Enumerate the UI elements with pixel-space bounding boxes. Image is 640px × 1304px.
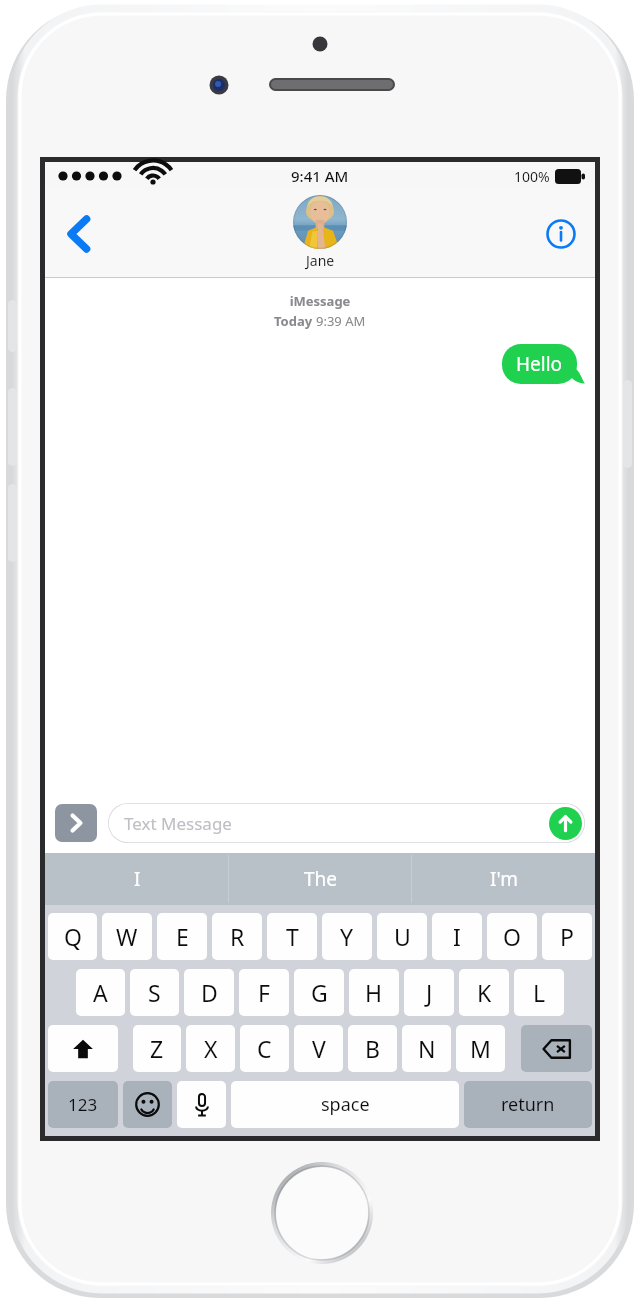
staticText: P: [560, 921, 574, 952]
button[interactable]: 123: [48, 1081, 118, 1128]
staticText: S: [148, 977, 161, 1008]
button[interactable]: Dictate: [177, 1081, 226, 1128]
button[interactable]: A: [76, 969, 125, 1016]
staticText: D: [201, 977, 218, 1008]
button[interactable]: Emoji: [123, 1081, 172, 1128]
staticText: 123: [68, 1093, 98, 1116]
button[interactable]: N: [402, 1025, 451, 1072]
button[interactable]: V: [294, 1025, 343, 1072]
staticText: return: [501, 1092, 555, 1117]
button[interactable]: L: [514, 969, 564, 1016]
button[interactable]: D: [184, 969, 234, 1016]
staticText: I: [134, 866, 141, 892]
button[interactable]: K: [459, 969, 509, 1016]
staticText: F: [258, 977, 270, 1008]
staticText: V: [312, 1033, 326, 1064]
button[interactable]: Y: [322, 913, 372, 960]
button[interactable]: I: [432, 913, 482, 960]
staticText: B: [365, 1033, 380, 1064]
button[interactable]: W: [102, 913, 152, 960]
button[interactable]: F: [239, 969, 289, 1016]
button[interactable]: Backspace: [521, 1025, 592, 1072]
button[interactable]: H: [349, 969, 399, 1016]
button[interactable]: P: [542, 913, 592, 960]
staticText: 100%: [514, 167, 550, 186]
button[interactable]: Shift: [48, 1025, 118, 1072]
button[interactable]: Hello: [502, 344, 585, 384]
button[interactable]: I'm: [412, 853, 595, 905]
button[interactable]: J: [404, 969, 454, 1016]
button[interactable]: Text Message: [108, 803, 585, 843]
staticText: E: [176, 921, 189, 952]
button[interactable]: return: [464, 1081, 592, 1128]
button[interactable]: Send: [549, 807, 582, 840]
button[interactable]: C: [240, 1025, 289, 1072]
staticText: O: [503, 921, 521, 952]
staticText: R: [230, 921, 245, 952]
staticText: K: [477, 977, 492, 1008]
staticText: U: [394, 921, 411, 952]
staticText: X: [204, 1033, 218, 1064]
staticText: Y: [340, 921, 354, 952]
staticText: M: [470, 1033, 491, 1064]
staticText: Jane: [306, 251, 335, 270]
staticText: Q: [64, 921, 82, 952]
button[interactable]: space: [231, 1081, 459, 1128]
staticText: 9:41 AM: [291, 166, 349, 186]
button[interactable]: E: [157, 913, 207, 960]
staticText: Hello: [516, 351, 563, 377]
staticText: L: [533, 977, 546, 1008]
button[interactable]: Details: [535, 208, 587, 260]
button[interactable]: R: [212, 913, 262, 960]
button[interactable]: G: [294, 969, 344, 1016]
button[interactable]: U: [377, 913, 427, 960]
staticText: G: [311, 977, 328, 1008]
staticText: Today: [274, 312, 316, 330]
button[interactable]: App drawer: [55, 804, 97, 842]
staticText: Z: [150, 1033, 164, 1064]
button[interactable]: O: [487, 913, 537, 960]
staticText: H: [365, 977, 383, 1008]
staticText: T: [286, 921, 299, 952]
button[interactable]: B: [348, 1025, 397, 1072]
staticText: iMessage: [45, 292, 595, 310]
staticText: I: [453, 921, 461, 952]
button[interactable]: S: [130, 969, 179, 1016]
button[interactable]: T: [267, 913, 317, 960]
staticText: C: [257, 1033, 272, 1064]
staticText: space: [321, 1092, 370, 1117]
button[interactable]: X: [186, 1025, 235, 1072]
button[interactable]: Jane: [293, 195, 347, 270]
button[interactable]: I: [45, 853, 229, 905]
button[interactable]: The: [229, 853, 412, 905]
button[interactable]: Back: [51, 206, 107, 262]
staticText: W: [116, 921, 138, 952]
button[interactable]: Q: [48, 913, 97, 960]
staticText: 9:39 AM: [316, 312, 366, 330]
button[interactable]: M: [456, 1025, 505, 1072]
staticText: A: [93, 977, 108, 1008]
button[interactable]: Z: [133, 1025, 181, 1072]
staticText: Text Message: [124, 812, 232, 835]
staticText: The: [304, 866, 338, 892]
staticText: I'm: [490, 866, 518, 892]
staticText: J: [426, 977, 433, 1008]
staticText: N: [418, 1033, 436, 1064]
